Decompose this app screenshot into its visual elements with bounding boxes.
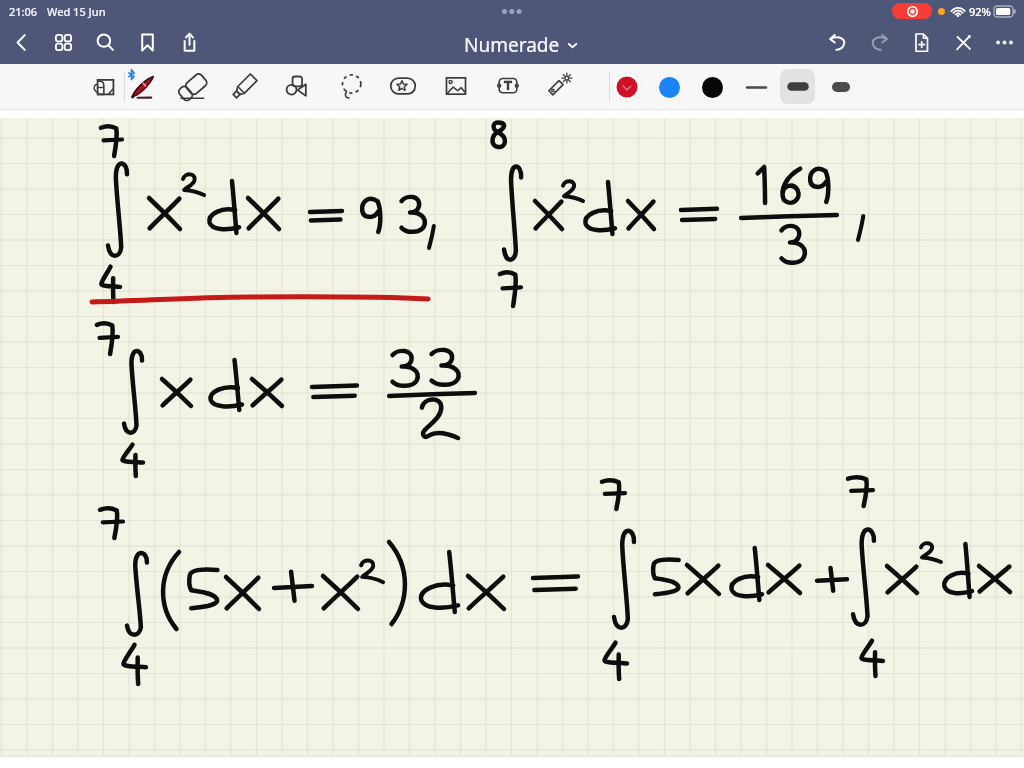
button[interactable]: Share: [168, 21, 210, 63]
button[interactable]: Redo: [858, 21, 900, 63]
button[interactable]: Cut: [942, 21, 984, 63]
button[interactable]: Back: [0, 21, 42, 63]
button[interactable]: Black colour: [698, 73, 726, 101]
button[interactable]: Blue colour: [655, 73, 683, 101]
staticText: Wed 15 Jun: [47, 4, 106, 19]
button[interactable]: Medium stroke: [780, 69, 815, 104]
button[interactable]: Bookmark: [126, 21, 168, 63]
staticText: Numerade: [464, 32, 560, 58]
button[interactable]: Sticker: [380, 64, 426, 110]
button[interactable]: Numerade: [458, 28, 584, 62]
button[interactable]: Page: [82, 64, 128, 110]
button[interactable]: Lasso select: [328, 64, 374, 110]
button[interactable]: Text box: [485, 64, 531, 110]
button[interactable]: Red colour: [610, 70, 644, 104]
button[interactable]: Search: [84, 21, 126, 63]
button[interactable]: Insert image: [433, 64, 479, 110]
staticText: 92%: [969, 4, 991, 19]
button[interactable]: Highlighter: [222, 64, 268, 110]
button[interactable]: More options: [983, 21, 1024, 63]
button[interactable]: Add page: [900, 21, 942, 63]
button[interactable]: Shapes: [275, 64, 321, 110]
staticText: 21:06: [9, 4, 38, 19]
button[interactable]: Eraser: [171, 64, 217, 110]
button[interactable]: Thin stroke: [740, 71, 772, 103]
button[interactable]: Pen: [118, 64, 164, 110]
button[interactable]: Undo: [816, 21, 858, 63]
button[interactable]: Pages: [42, 21, 84, 63]
button[interactable]: Thick stroke: [825, 71, 857, 103]
button[interactable]: Magic wand: [536, 64, 582, 110]
